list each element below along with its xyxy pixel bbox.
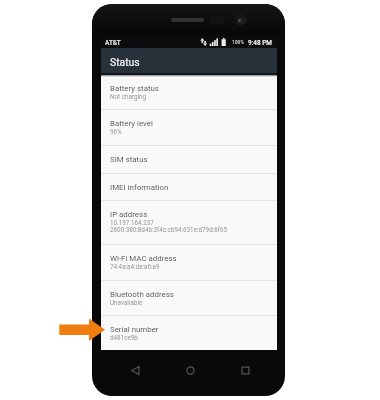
button[interactable]: Back — [126, 361, 144, 379]
staticText: Not charging — [110, 93, 147, 100]
button[interactable]: IP address — [101, 201, 277, 244]
staticText: 9:48 PM — [248, 39, 272, 47]
staticText: SIM status — [110, 155, 148, 164]
button[interactable]: Bluetooth address — [101, 281, 277, 315]
button[interactable]: Recent apps — [236, 361, 254, 379]
staticText: IMEI information — [110, 183, 169, 192]
staticText: Wi-Fi MAC address — [110, 254, 177, 263]
staticText: Unavailable — [110, 299, 143, 306]
staticText: Bluetooth address — [110, 290, 174, 299]
staticText: IP address — [110, 210, 148, 219]
button[interactable]: Home — [181, 361, 199, 379]
staticText: 96% — [110, 128, 122, 135]
staticText: 2600:380:8d4b:3f4c:cb94:631e:d79d:6f65 — [110, 226, 228, 233]
button[interactable]: Battery status — [101, 73, 277, 109]
button[interactable]: Battery level — [101, 110, 277, 145]
button[interactable]: Wi-Fi MAC address — [101, 245, 277, 280]
button[interactable]: Serial number — [101, 316, 277, 350]
staticText: 74:4a:a4:de:a6:a9 — [110, 263, 160, 270]
staticText: Status — [110, 56, 140, 68]
button[interactable]: Status — [101, 48, 277, 73]
staticText: 10.197.164.237 — [110, 219, 154, 226]
staticText: d481ce9b — [110, 334, 138, 341]
staticText: Serial number — [110, 325, 159, 334]
staticText: 100% — [232, 39, 245, 45]
staticText: AT&T — [105, 39, 121, 47]
staticText: Battery status — [110, 84, 159, 93]
button[interactable]: SIM status — [101, 146, 277, 173]
button[interactable]: IMEI information — [101, 174, 277, 200]
staticText: Battery level — [110, 119, 153, 128]
